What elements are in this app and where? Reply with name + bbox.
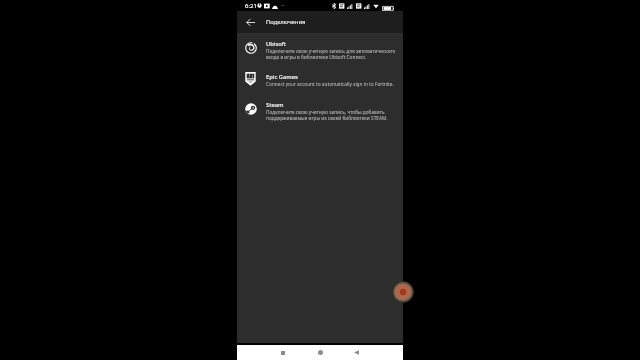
button[interactable]: Steam xyxy=(237,97,403,123)
staticText: Подключите свою учетную запись для автом… xyxy=(266,48,397,60)
staticText: Epic Games xyxy=(266,73,298,81)
staticText: Connect your account to automatically si… xyxy=(266,81,394,87)
staticText: Ubisoft xyxy=(266,40,287,48)
button[interactable]: Recent apps xyxy=(275,345,290,360)
staticText: Подключите свою учетную запись, чтобы до… xyxy=(266,109,397,121)
staticText: ·· xyxy=(281,1,285,10)
button[interactable]: Ubisoft xyxy=(237,36,403,62)
button[interactable]: Back xyxy=(242,14,258,30)
button[interactable]: Back xyxy=(349,345,364,360)
staticText: Steam xyxy=(266,101,284,109)
button[interactable]: Epic Games xyxy=(237,68,403,94)
button[interactable]: Support chat xyxy=(392,281,414,303)
button[interactable]: Home xyxy=(313,345,328,360)
staticText: Подключения xyxy=(266,18,306,26)
staticText: 6:21 xyxy=(245,2,257,10)
